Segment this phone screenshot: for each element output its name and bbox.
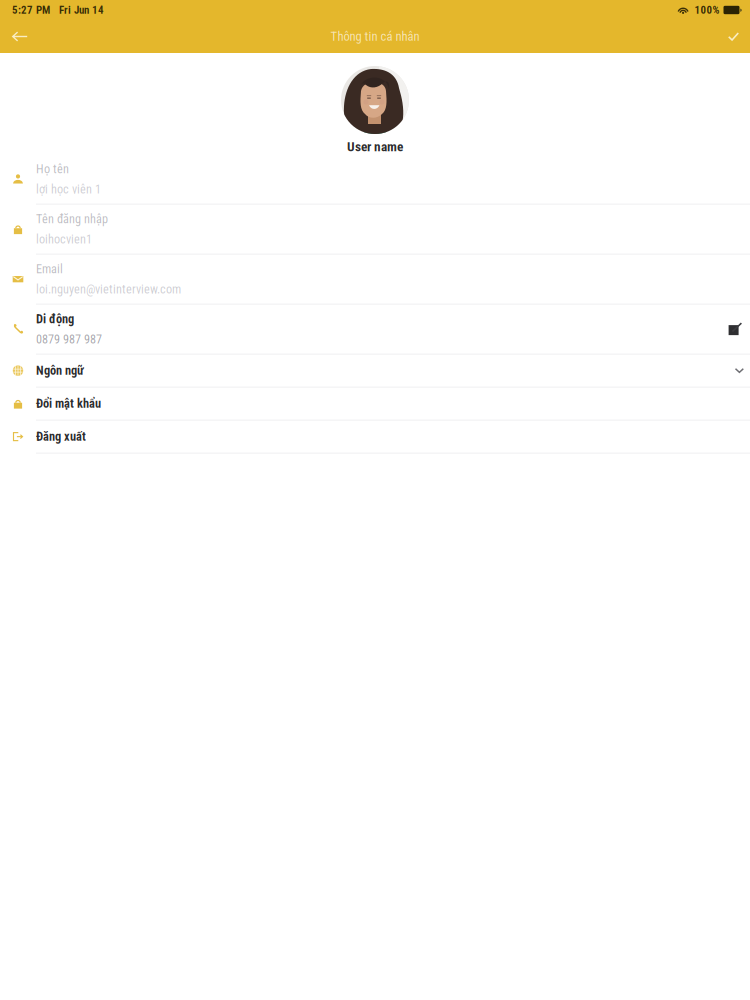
staticText: Thông tin cá nhân	[330, 29, 419, 44]
button[interactable]: Di động	[0, 305, 750, 355]
staticText: Tên đăng nhập	[36, 212, 108, 226]
staticText: loi.nguyen@vietinterview.com	[36, 282, 181, 296]
staticText: lợi học viên 1	[36, 182, 101, 196]
staticText: Đổi mật khẩu	[36, 396, 101, 411]
staticText: Họ tên	[36, 162, 69, 176]
staticText: User name	[347, 139, 403, 155]
staticText: Ngôn ngữ	[36, 363, 84, 378]
button[interactable]: Email	[0, 255, 750, 305]
staticText: loihocvien1	[36, 232, 92, 246]
button[interactable]: Họ tên	[0, 155, 750, 205]
staticText: 5:27 PM	[12, 4, 50, 16]
button[interactable]: Save	[717, 20, 750, 53]
staticText: Di động	[36, 312, 74, 326]
button[interactable]: Ngôn ngữ	[0, 355, 750, 388]
button[interactable]: Edit mobile number	[720, 318, 742, 340]
staticText: 100%	[694, 4, 719, 16]
button[interactable]: Tên đăng nhập	[0, 205, 750, 255]
button[interactable]: Đổi mật khẩu	[0, 388, 750, 421]
button[interactable]: Đăng xuất	[0, 421, 750, 454]
staticText: Email	[36, 262, 63, 276]
staticText: 0879 987 987	[36, 332, 102, 347]
staticText: Fri Jun 14	[59, 4, 104, 16]
button[interactable]: Back	[1, 20, 39, 53]
staticText: Đăng xuất	[36, 429, 86, 444]
